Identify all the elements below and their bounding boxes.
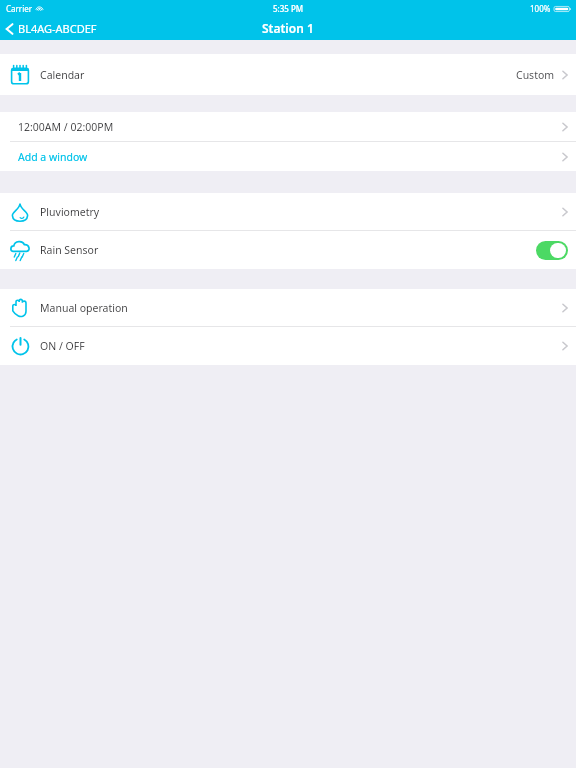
- staticText: ON / OFF: [40, 339, 85, 353]
- button[interactable]: 12:00AM / 02:00PM: [0, 112, 576, 141]
- staticText: 100%: [530, 3, 551, 14]
- staticText: Add a window: [18, 150, 88, 164]
- staticText: Manual operation: [40, 301, 128, 315]
- staticText: Pluviometry: [40, 205, 100, 219]
- button[interactable]: Add a window: [0, 142, 576, 171]
- button[interactable]: Rain Sensor toggle, on: [536, 241, 568, 260]
- staticText: Calendar: [40, 68, 85, 82]
- button[interactable]: Back to BL4AG-ABCDEF: [0, 18, 105, 39]
- staticText: 12:00AM / 02:00PM: [18, 120, 114, 134]
- staticText: Custom: [516, 68, 555, 82]
- button[interactable]: ON / OFF: [0, 327, 576, 365]
- staticText: Carrier: [6, 3, 33, 14]
- button[interactable]: Calendar: [0, 54, 576, 95]
- staticText: 5:35 PM: [273, 3, 304, 14]
- button[interactable]: Manual operation: [0, 289, 576, 326]
- staticText: Rain Sensor: [40, 243, 99, 257]
- button[interactable]: Rain Sensor: [0, 231, 576, 269]
- button[interactable]: Pluviometry: [0, 193, 576, 230]
- staticText: BL4AG-ABCDEF: [18, 21, 97, 36]
- staticText: Station 1: [262, 20, 314, 36]
